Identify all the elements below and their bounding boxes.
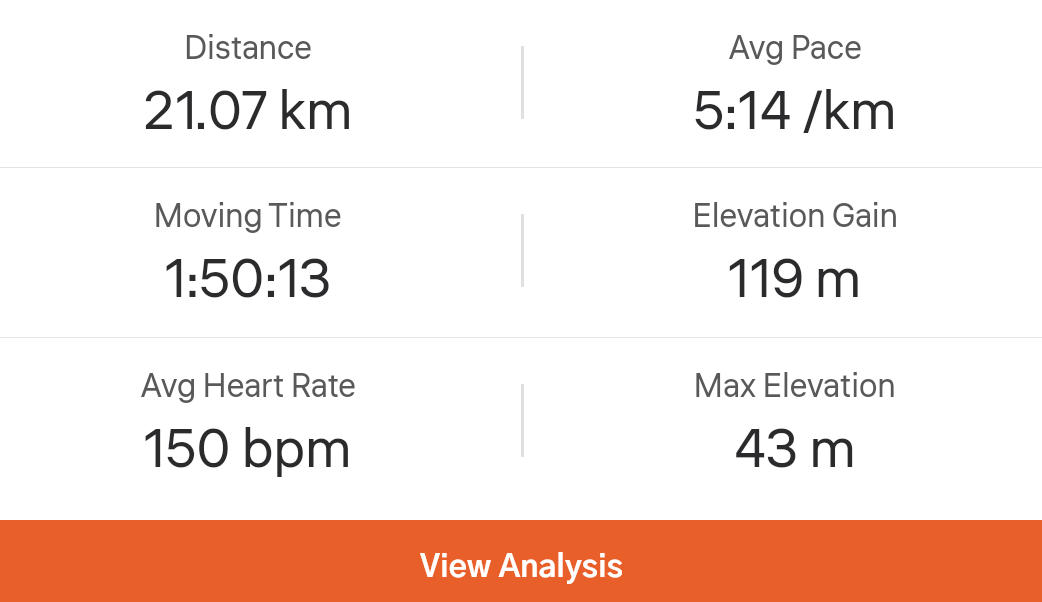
button[interactable]: Avg Heart Rate: [0, 338, 495, 508]
staticText: 150 bpm: [143, 411, 352, 488]
staticText: Avg Heart Rate: [140, 363, 356, 410]
staticText: Elevation Gain: [692, 193, 898, 240]
button[interactable]: Avg Pace: [547, 0, 1042, 167]
staticText: 1:50:13: [164, 241, 332, 318]
staticText: Avg Pace: [728, 25, 862, 72]
staticText: Max Elevation: [693, 363, 896, 410]
staticText: Moving Time: [153, 193, 342, 240]
button[interactable]: Max Elevation: [547, 338, 1042, 508]
staticText: 43 m: [734, 411, 856, 488]
button[interactable]: Moving Time: [0, 168, 495, 337]
button[interactable]: Distance: [0, 0, 495, 167]
staticText: View Analysis: [420, 552, 623, 583]
button[interactable]: View Analysis: [0, 520, 1042, 602]
staticText: Distance: [184, 25, 312, 72]
staticText: 21.07 km: [143, 73, 353, 150]
staticText: 5:14 /km: [693, 73, 897, 150]
button[interactable]: Elevation Gain: [547, 168, 1042, 337]
staticText: 119 m: [727, 241, 862, 318]
